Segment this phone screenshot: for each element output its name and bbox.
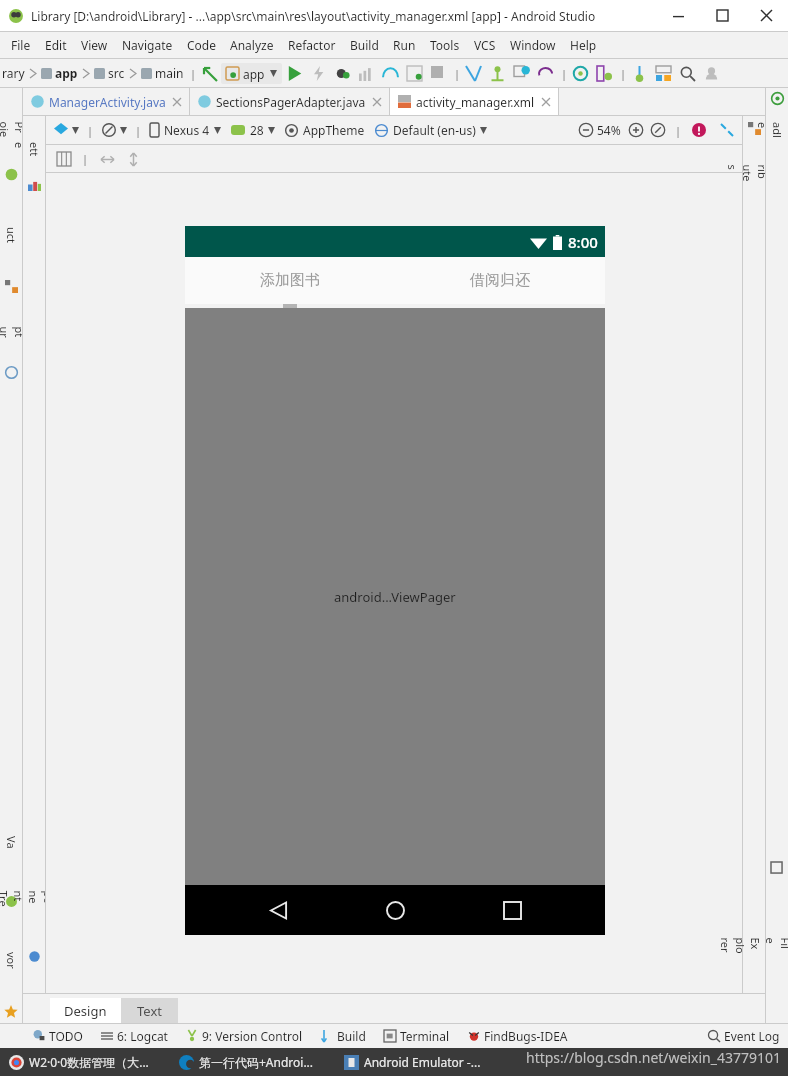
button[interactable]: Design mode: [54, 123, 79, 137]
staticText: app: [55, 65, 78, 81]
staticText: Tools: [430, 37, 460, 53]
button[interactable]: activity_manager.xml: [390, 88, 558, 115]
button[interactable]: AppTheme: [285, 122, 365, 138]
button[interactable]: Terminal: [375, 1026, 459, 1046]
button[interactable]: Android Emulator -...: [339, 1054, 486, 1070]
button[interactable]: 1: Project: [3, 92, 20, 168]
button[interactable]: Navigate: [115, 33, 180, 57]
button[interactable]: Expand: [716, 119, 738, 141]
button[interactable]: Horizontal guideline: [97, 149, 117, 169]
staticText: Run: [393, 37, 416, 53]
button[interactable]: Zoom to fit: [647, 119, 669, 141]
button[interactable]: Account: [699, 60, 723, 86]
button[interactable]: Zoom in: [625, 119, 647, 141]
button[interactable]: 9: Version Control: [177, 1026, 312, 1046]
button[interactable]: Attributes: [746, 135, 763, 211]
button[interactable]: Debug: [330, 60, 354, 86]
staticText: 1: Project: [0, 121, 41, 138]
button[interactable]: Home: [371, 886, 419, 934]
button[interactable]: Maximize: [700, 0, 744, 31]
button[interactable]: Back: [254, 886, 302, 934]
staticText: ManagerActivity.java: [49, 94, 166, 110]
button[interactable]: Tools: [423, 33, 467, 57]
staticText: Build Variants: [0, 836, 49, 853]
button[interactable]: Refactor: [281, 33, 343, 57]
button[interactable]: Recents: [488, 886, 536, 934]
staticText: android...ViewPager: [334, 588, 456, 606]
button[interactable]: Analyze: [223, 33, 281, 57]
button[interactable]: Build: [312, 1026, 375, 1046]
button[interactable]: ManagerActivity.java: [23, 88, 189, 115]
staticText: Nexus 4: [164, 122, 210, 138]
staticText: SectionsPagerAdapter.java: [216, 94, 366, 110]
button[interactable]: 7: Structure: [3, 191, 20, 280]
button[interactable]: Project Structure: [651, 60, 675, 86]
button[interactable]: Palette: [26, 122, 43, 178]
staticText: Build: [337, 1028, 366, 1044]
button[interactable]: W2·0·0数据管理（大...: [4, 1054, 154, 1070]
button[interactable]: Run: [282, 60, 306, 86]
button[interactable]: Build Variants: [3, 793, 20, 895]
button[interactable]: Undo: [533, 60, 557, 86]
button[interactable]: SectionsPagerAdapter.java: [190, 88, 389, 115]
staticText: 54%: [597, 122, 621, 138]
staticText: W2·0·0数据管理（大...: [29, 1054, 149, 1070]
button[interactable]: Stop all: [426, 60, 450, 86]
button[interactable]: Nexus 4: [150, 122, 221, 138]
button[interactable]: Profile: [354, 60, 378, 86]
button[interactable]: 2: Favorites: [3, 916, 20, 1005]
button[interactable]: Back: [197, 60, 221, 86]
button[interactable]: 借阅归还: [395, 257, 605, 304]
button[interactable]: Design: [50, 998, 121, 1023]
button[interactable]: 28: [231, 122, 275, 138]
button[interactable]: Show layout decorations: [54, 149, 74, 169]
button[interactable]: Component Tree: [26, 848, 43, 950]
button[interactable]: Gradle: [769, 105, 786, 155]
staticText: |: [620, 66, 627, 81]
button[interactable]: TODO: [24, 1026, 92, 1046]
button[interactable]: SDK Manager: [568, 60, 592, 86]
button[interactable]: Edit: [38, 33, 74, 57]
button[interactable]: Device File Explorer: [769, 875, 786, 1017]
button[interactable]: Minimize: [656, 0, 700, 31]
button[interactable]: Help: [563, 33, 604, 57]
button[interactable]: AVD Manager: [592, 60, 616, 86]
button[interactable]: History: [509, 60, 533, 86]
staticText: VCS: [474, 37, 496, 53]
button[interactable]: Close: [744, 0, 788, 31]
staticText: 9: Version Control: [202, 1028, 303, 1044]
button[interactable]: Code: [180, 33, 223, 57]
button[interactable]: 6: Logcat: [92, 1026, 177, 1046]
button[interactable]: 第一行代码+Androi...: [174, 1054, 319, 1070]
button[interactable]: app: [221, 63, 282, 84]
staticText: |: [561, 66, 568, 81]
button[interactable]: Default (en-us): [375, 122, 487, 138]
button[interactable]: Zoom out: [575, 119, 597, 141]
button[interactable]: Errors: [688, 119, 710, 141]
staticText: Event Log: [724, 1028, 780, 1044]
button[interactable]: Window: [503, 33, 563, 57]
button[interactable]: View: [74, 33, 115, 57]
button[interactable]: Sync Gradle: [627, 60, 651, 86]
staticText: FindBugs-IDEA: [484, 1028, 568, 1044]
button[interactable]: Commit: [485, 60, 509, 86]
button[interactable]: Vertical guideline: [123, 149, 143, 169]
button[interactable]: Stop: [402, 60, 426, 86]
button[interactable]: VCS: [467, 33, 503, 57]
button[interactable]: Orientation: [102, 123, 127, 137]
button[interactable]: Apply Changes: [306, 60, 330, 86]
button[interactable]: Text: [121, 998, 178, 1023]
staticText: https://blog.csdn.net/weixin_43779101: [526, 1048, 782, 1067]
button[interactable]: Run: [386, 33, 423, 57]
button[interactable]: Search: [675, 60, 699, 86]
button[interactable]: Captures: [3, 303, 20, 366]
button[interactable]: 添加图书: [185, 257, 395, 304]
button[interactable]: Attach debugger: [378, 60, 402, 86]
staticText: Code: [187, 37, 216, 53]
button[interactable]: File: [4, 33, 38, 57]
staticText: src: [108, 65, 125, 81]
button[interactable]: Update project: [461, 60, 485, 86]
button[interactable]: Build: [343, 33, 386, 57]
button[interactable]: Event Log: [700, 1028, 788, 1044]
button[interactable]: FindBugs-IDEA: [459, 1026, 577, 1046]
